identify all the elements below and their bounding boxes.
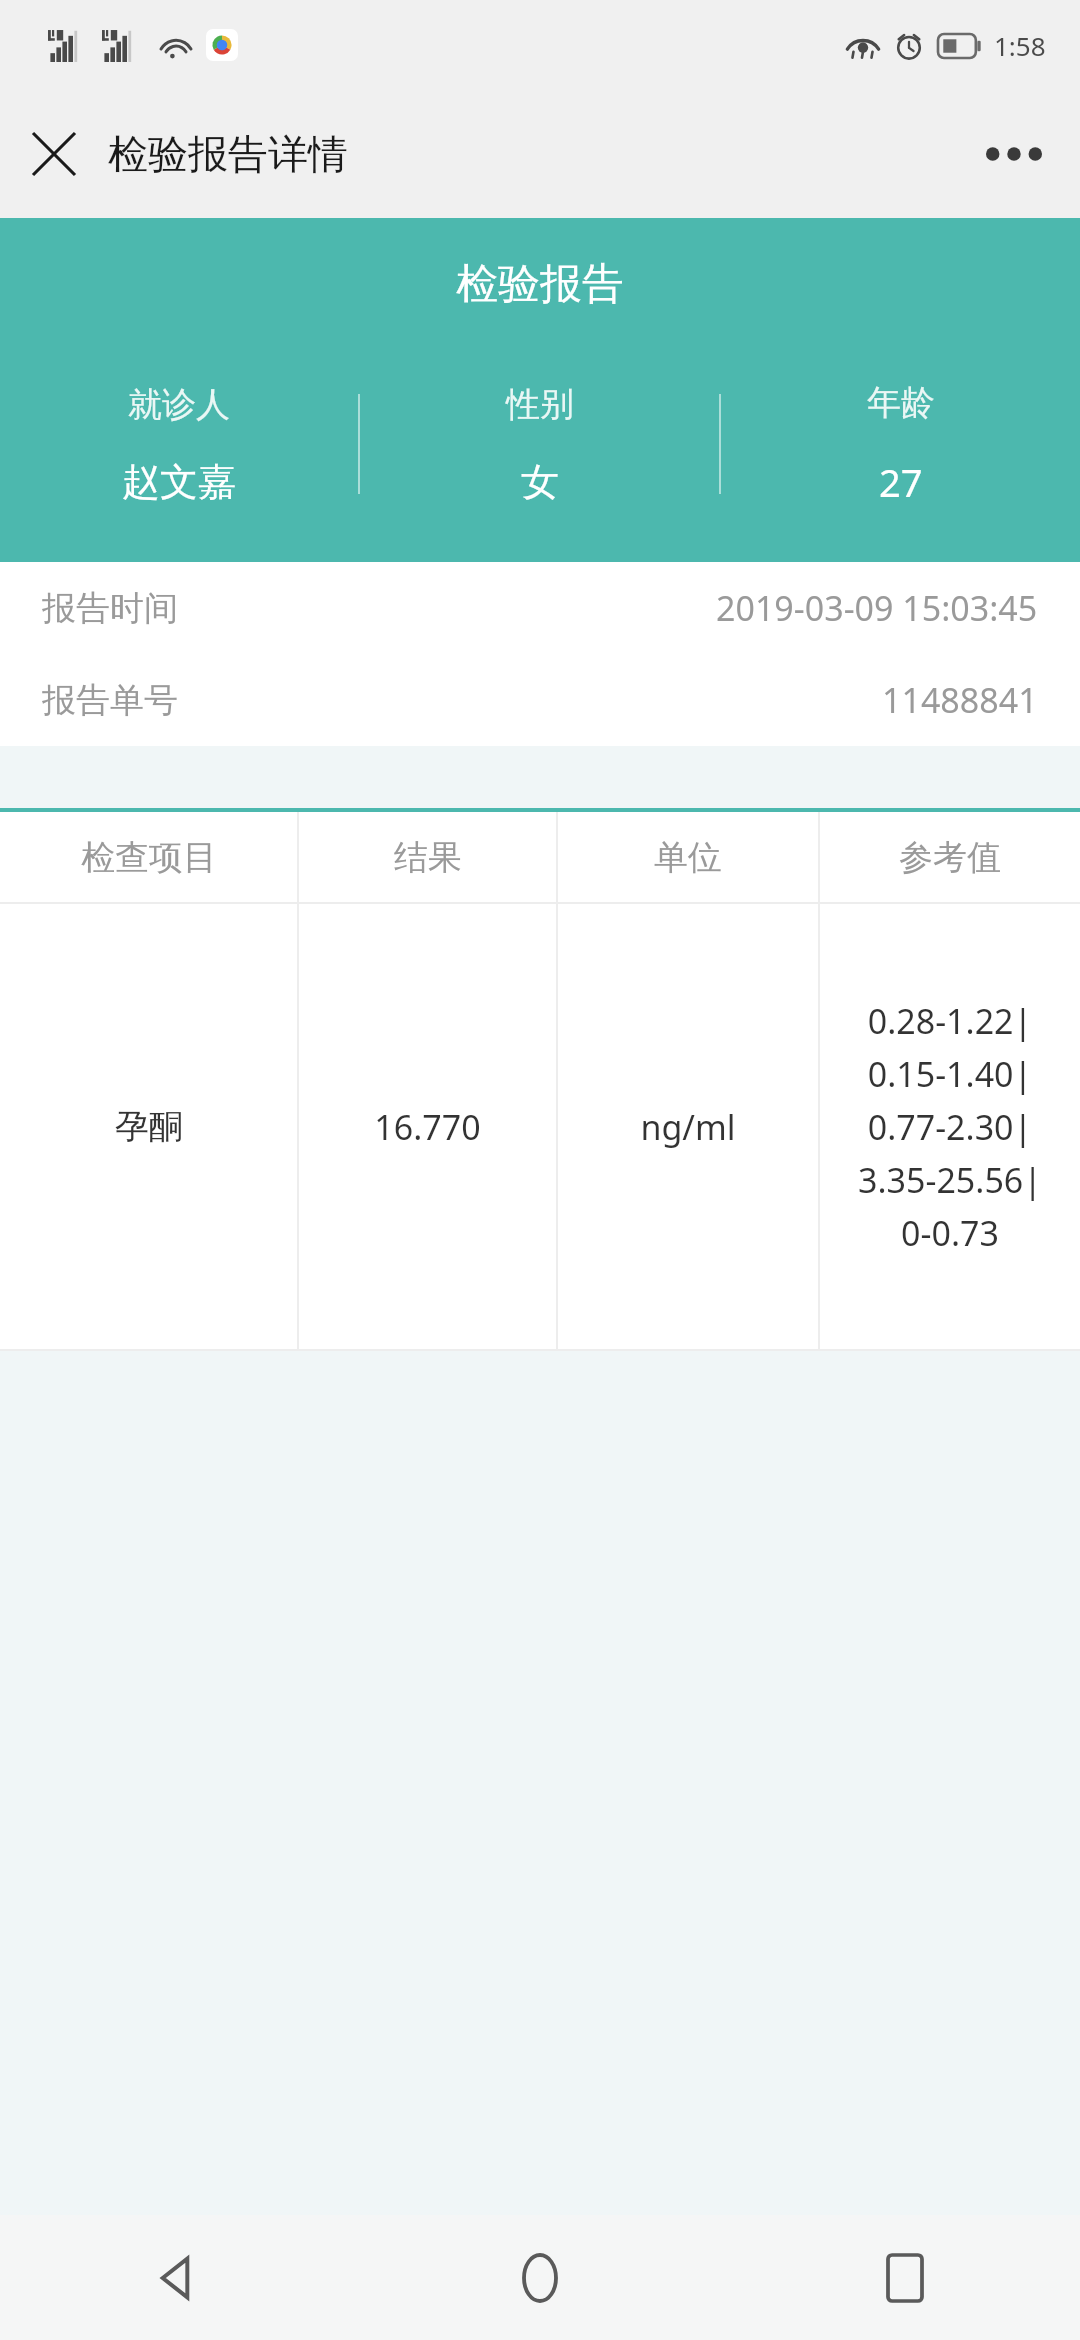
staticText: 报告时间 — [42, 587, 178, 630]
staticText: 27 — [879, 456, 923, 508]
staticText: 孕酮 — [115, 1105, 183, 1148]
staticText: 就诊人 — [128, 383, 230, 426]
button[interactable]: 报告单号 — [0, 654, 1080, 746]
staticText: 性别 — [506, 383, 574, 426]
button[interactable]: Home — [485, 2223, 595, 2333]
staticText: 赵文嘉 — [122, 458, 236, 506]
staticText: 2019-03-09 15:03:45 — [716, 585, 1038, 631]
staticText: 女 — [521, 458, 559, 506]
staticText: 检验报告详情 — [108, 129, 348, 179]
button[interactable]: Close — [16, 116, 92, 192]
staticText: ng/ml — [640, 1104, 736, 1150]
button[interactable]: More options — [976, 116, 1052, 192]
staticText: 年龄 — [867, 381, 935, 424]
button[interactable]: Recents — [850, 2223, 960, 2333]
staticText: 0.28-1.22|0.15-1.40|0.77-2.30|3.35-25.56… — [830, 998, 1070, 1256]
button[interactable]: 报告时间 — [0, 562, 1080, 654]
staticText: 参考值 — [899, 836, 1001, 879]
staticText: 报告单号 — [42, 679, 178, 722]
staticText: 11488841 — [882, 677, 1038, 723]
staticText: 1:58 — [994, 28, 1046, 63]
staticText: 16.770 — [374, 1104, 481, 1150]
staticText: 检验报告 — [0, 258, 1080, 311]
staticText: 检查项目 — [81, 836, 217, 879]
staticText: 单位 — [654, 836, 722, 879]
staticText: 结果 — [394, 836, 462, 879]
button[interactable]: Back — [120, 2223, 230, 2333]
